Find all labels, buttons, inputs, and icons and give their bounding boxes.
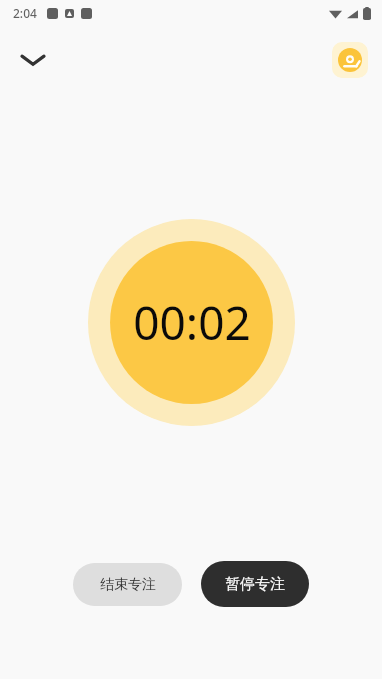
button[interactable]: 暂停专注 xyxy=(201,561,309,607)
button[interactable]: 结束专注 xyxy=(73,563,182,606)
button[interactable]: Music xyxy=(332,42,368,78)
staticText: 00:02 xyxy=(133,291,251,354)
button[interactable]: Collapse xyxy=(13,40,53,80)
staticText: 2:04 xyxy=(13,5,37,21)
staticText: 暂停专注 xyxy=(225,575,285,594)
staticText: 结束专注 xyxy=(100,576,156,594)
